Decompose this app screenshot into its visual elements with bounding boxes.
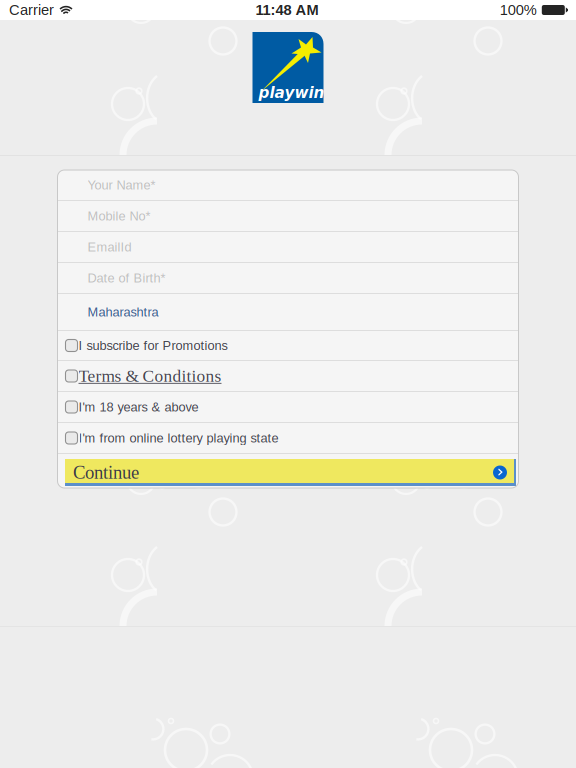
staticText: I'm from online lottery playing state [78,431,278,445]
button[interactable]: I'm from online lottery playing state [57,423,518,453]
staticText: Maharashtra [87,305,158,319]
staticText: I subscribe for Promotions [78,338,227,353]
staticText: Your Name* [87,178,155,192]
staticText: playwin [258,84,324,102]
button[interactable]: Terms & Conditions [57,361,518,391]
staticText: Carrier [9,2,54,18]
staticText: Mobile No* [87,209,150,223]
staticText: I'm 18 years & above [78,400,198,414]
staticText: 100% [500,2,537,18]
staticText: Continue [73,462,139,483]
staticText: 11:48 AM [255,2,318,18]
button[interactable]: I subscribe for Promotions [57,331,518,360]
button[interactable]: I'm 18 years & above [57,392,518,422]
staticText: Terms & Conditions [78,366,221,386]
staticText: Date of Birth* [87,271,165,285]
button[interactable]: Maharashtra [57,294,518,330]
button[interactable]: Continue [60,454,516,488]
staticText: EmailId [87,240,131,254]
